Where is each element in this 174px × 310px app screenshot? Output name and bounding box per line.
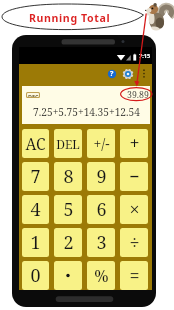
button[interactable]: − — [120, 162, 148, 191]
button[interactable]: 3 — [87, 228, 115, 257]
staticText: 8 — [63, 164, 74, 189]
staticText: Running Total — [29, 11, 111, 25]
button[interactable]: + — [120, 129, 148, 158]
button[interactable]: 8 — [54, 162, 82, 191]
staticText: 6 — [96, 197, 107, 222]
staticText: AC — [25, 133, 46, 154]
staticText: ÷ — [129, 230, 140, 255]
staticText: + — [129, 131, 140, 156]
button[interactable]: 6 — [87, 195, 115, 224]
button[interactable]: 2 — [54, 228, 82, 257]
staticText: 39.89 — [127, 89, 149, 101]
button[interactable]: +/- — [87, 129, 115, 158]
button[interactable]: 1 — [22, 228, 49, 257]
button[interactable]: 4 — [22, 195, 49, 224]
button[interactable]: AC — [22, 129, 49, 158]
staticText: % — [94, 265, 109, 287]
button[interactable]: Settings — [121, 67, 135, 81]
button[interactable]: Help — [105, 67, 119, 81]
staticText: 7:15 — [139, 52, 151, 60]
button[interactable] — [54, 261, 82, 290]
staticText: DEC — [28, 93, 39, 97]
staticText: − — [129, 164, 140, 189]
button[interactable]: DEL — [54, 129, 82, 158]
button[interactable]: 0 — [22, 261, 49, 290]
button[interactable]: = — [120, 261, 148, 290]
button[interactable]: 5 — [54, 195, 82, 224]
staticText: 2 — [63, 230, 74, 255]
staticText: 7 — [30, 164, 41, 189]
button[interactable]: 9 — [87, 162, 115, 191]
staticText: ? — [110, 69, 114, 79]
staticText: +/- — [93, 134, 110, 153]
button[interactable]: ÷ — [120, 228, 148, 257]
staticText: 0 — [30, 263, 41, 288]
staticText: 7.25+5.75+14.35+12.54 — [33, 105, 140, 119]
button[interactable]: 7 — [22, 162, 49, 191]
staticText: = — [129, 263, 140, 288]
staticText: 1 — [30, 230, 41, 255]
button[interactable]: × — [120, 195, 148, 224]
staticText: 9 — [96, 164, 107, 189]
staticText: 4 — [30, 197, 41, 222]
staticText: × — [129, 197, 140, 222]
button[interactable]: More options — [138, 67, 150, 79]
button[interactable]: % — [87, 261, 115, 290]
staticText: 5 — [63, 197, 74, 222]
staticText: 3 — [96, 230, 107, 255]
staticText: DEL — [56, 136, 80, 152]
